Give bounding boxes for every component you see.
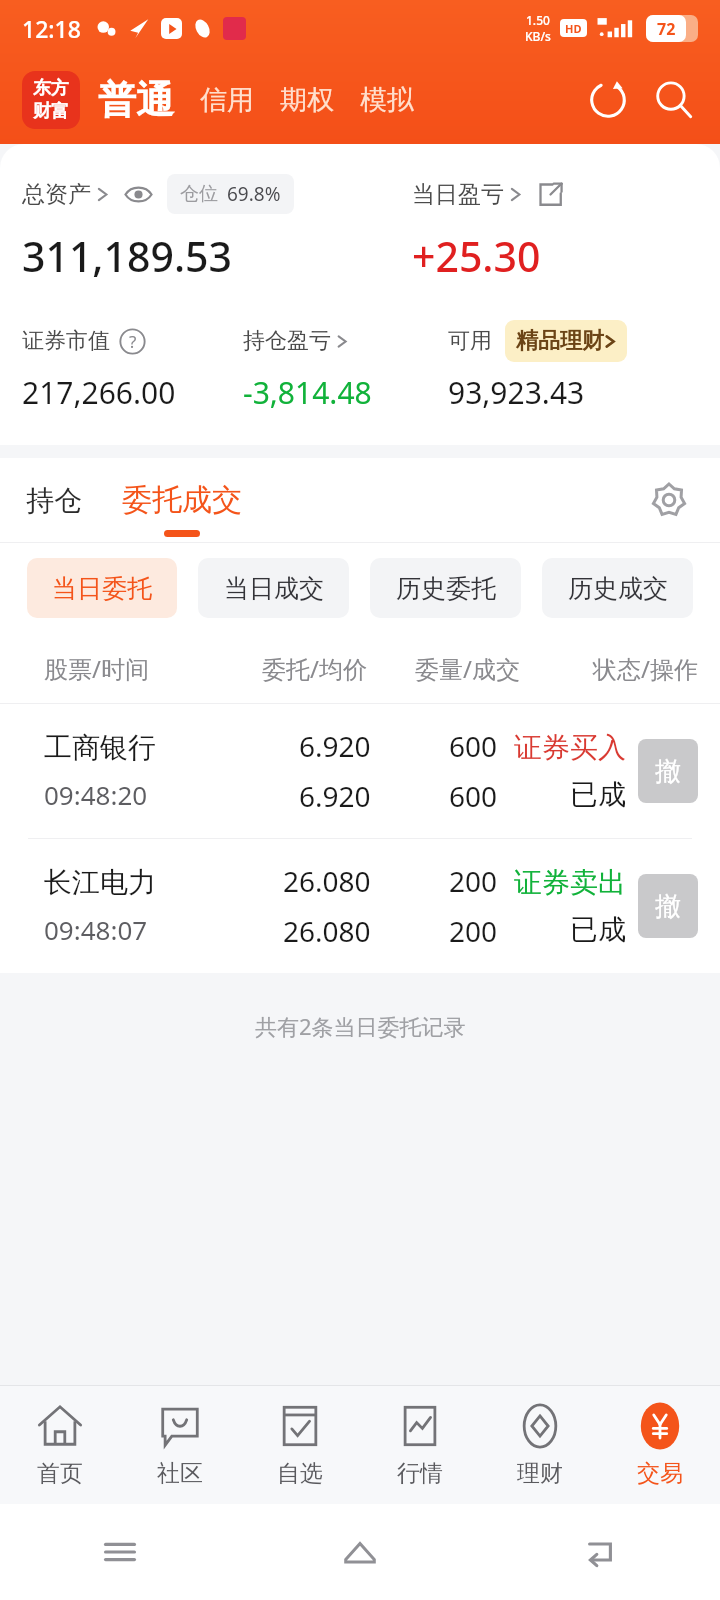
button[interactable]: 信用 <box>198 77 256 123</box>
button[interactable]: Toggle balance visibility <box>121 177 155 211</box>
button[interactable]: 持仓 <box>22 458 86 542</box>
staticText: 26.080 <box>283 912 371 950</box>
button[interactable]: 委托成交 <box>118 458 246 542</box>
staticText: 已成 <box>570 912 626 947</box>
button[interactable]: Open profit detail <box>535 179 565 209</box>
staticText: 93,923.43 <box>448 372 698 413</box>
button[interactable]: 首页 <box>0 1386 120 1504</box>
button[interactable]: 撤 <box>638 874 698 938</box>
staticText: 已成 <box>570 777 626 812</box>
staticText: 委托/均价 <box>206 652 367 685</box>
staticText: 当日委托 <box>52 573 152 604</box>
staticText: 历史委托 <box>396 573 496 604</box>
button[interactable]: 行情 <box>360 1386 480 1504</box>
staticText: 持仓 <box>26 483 82 518</box>
staticText: 历史成交 <box>568 573 668 604</box>
button[interactable]: 工商银行 <box>0 704 720 838</box>
staticText: 600 <box>449 777 498 815</box>
staticText: 证券卖出 <box>514 865 626 900</box>
staticText: 09:48:07 <box>44 912 148 947</box>
staticText: 普通 <box>98 76 174 124</box>
button[interactable]: 当日委托 <box>27 558 177 618</box>
staticText: 交易 <box>637 1459 683 1488</box>
staticText: 12:18 <box>22 13 81 44</box>
staticText: 撤 <box>655 755 681 788</box>
staticText: 600 <box>449 727 498 765</box>
button[interactable]: 期权 <box>278 77 336 123</box>
button[interactable]: 持仓盈亏 <box>243 327 448 355</box>
staticText: 长江电力 <box>44 865 156 900</box>
staticText: 信用 <box>200 83 254 117</box>
staticText: KB/s <box>525 28 551 44</box>
staticText: 理财 <box>517 1459 563 1488</box>
button[interactable]: 理财 <box>480 1386 600 1504</box>
staticText: 1.50 <box>526 12 550 28</box>
staticText: 社区 <box>157 1459 203 1488</box>
staticText: 26.080 <box>283 862 371 900</box>
staticText: 总资产 <box>22 180 91 209</box>
staticText: 可用 <box>448 327 492 355</box>
staticText: 200 <box>449 912 498 950</box>
staticText: 东方 <box>33 77 69 100</box>
staticText: 共有2条当日委托记录 <box>255 1011 466 1041</box>
staticText: 委量/成交 <box>367 652 520 685</box>
staticText: 财富 <box>33 100 69 123</box>
button[interactable]: 普通 <box>98 76 174 124</box>
button[interactable]: 自选 <box>240 1386 360 1504</box>
staticText: HD <box>565 21 582 36</box>
button[interactable]: East Money logo <box>22 71 80 129</box>
staticText: +25.30 <box>412 228 541 284</box>
staticText: 217,266.00 <box>22 372 243 413</box>
staticText: 工商银行 <box>44 730 156 765</box>
staticText: 行情 <box>397 1459 443 1488</box>
staticText: 证券市值 <box>22 327 110 355</box>
button[interactable]: 当日盈亏 <box>412 180 522 209</box>
staticText: 当日盈亏 <box>412 180 504 209</box>
staticText: 状态/操作 <box>520 652 698 685</box>
button[interactable]: 模拟 <box>358 77 416 123</box>
staticText: 撤 <box>655 890 681 923</box>
staticText: 模拟 <box>360 83 414 117</box>
staticText: 6.920 <box>299 777 371 815</box>
staticText: 200 <box>449 862 498 900</box>
button[interactable]: 长江电力 <box>0 839 720 973</box>
staticText: 精品理财 <box>516 327 604 355</box>
button[interactable]: 交易 <box>600 1386 720 1504</box>
staticText: 311,189.53 <box>22 228 412 284</box>
button[interactable]: 精品理财 <box>505 320 627 362</box>
button[interactable]: Help <box>119 328 146 355</box>
staticText: 持仓盈亏 <box>243 327 331 355</box>
staticText: 72 <box>657 18 676 40</box>
staticText: 证券买入 <box>514 730 626 765</box>
staticText: 期权 <box>280 83 334 117</box>
button[interactable]: Back <box>480 1504 720 1600</box>
button[interactable]: 当日成交 <box>198 558 349 618</box>
staticText: 6.920 <box>299 727 371 765</box>
button[interactable]: Home <box>240 1504 480 1600</box>
button[interactable]: 总资产 <box>22 180 109 209</box>
button[interactable]: Settings <box>640 471 698 529</box>
button[interactable]: 撤 <box>638 739 698 803</box>
button[interactable]: 历史委托 <box>370 558 521 618</box>
button[interactable]: Search <box>648 74 700 126</box>
button[interactable]: Recent apps <box>0 1504 240 1600</box>
staticText: 09:48:20 <box>44 777 148 812</box>
staticText: 当日成交 <box>224 573 324 604</box>
button[interactable]: 仓位 <box>167 174 294 214</box>
button[interactable]: 历史成交 <box>542 558 693 618</box>
staticText: 股票/时间 <box>44 652 206 685</box>
staticText: -3,814.48 <box>243 372 448 413</box>
button[interactable]: 社区 <box>120 1386 240 1504</box>
staticText: 自选 <box>277 1459 323 1488</box>
staticText: ? <box>129 330 137 353</box>
staticText: 首页 <box>37 1459 83 1488</box>
button[interactable]: Refresh <box>582 74 634 126</box>
staticText: 仓位 <box>180 182 218 206</box>
staticText: 69.8% <box>227 181 281 207</box>
staticText: 委托成交 <box>122 481 242 519</box>
